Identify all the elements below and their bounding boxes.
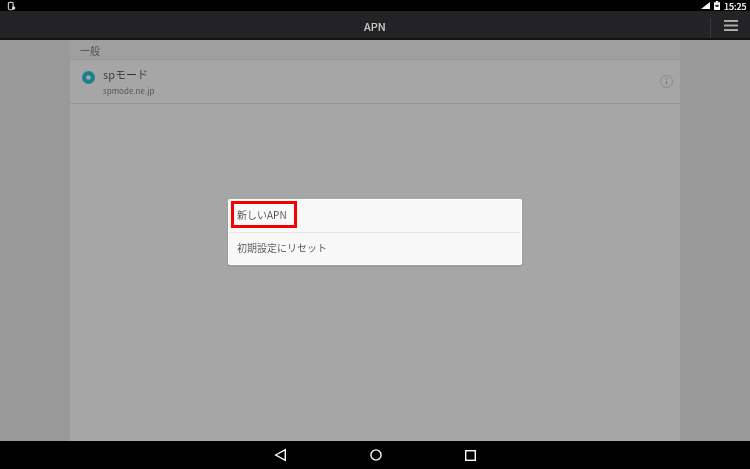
button[interactable]: spモード	[70, 60, 680, 103]
staticText: 新しいAPN	[237, 207, 287, 221]
button[interactable]: Details	[651, 66, 681, 96]
staticText: 一般	[80, 43, 100, 57]
staticText: 15:25	[724, 0, 747, 11]
button[interactable]: Home	[328, 441, 423, 469]
button[interactable]: Recents	[423, 441, 518, 469]
button[interactable]: 新しいAPN	[229, 200, 521, 232]
button[interactable]: 初期設定にリセット	[229, 233, 521, 264]
staticText: APN	[364, 18, 386, 34]
staticText: spmode.ne.jp	[103, 85, 155, 97]
button[interactable]: Back	[233, 441, 328, 469]
staticText: 初期設定にリセット	[237, 240, 327, 254]
button[interactable]: Menu	[711, 11, 750, 40]
staticText: spモード	[103, 66, 148, 82]
